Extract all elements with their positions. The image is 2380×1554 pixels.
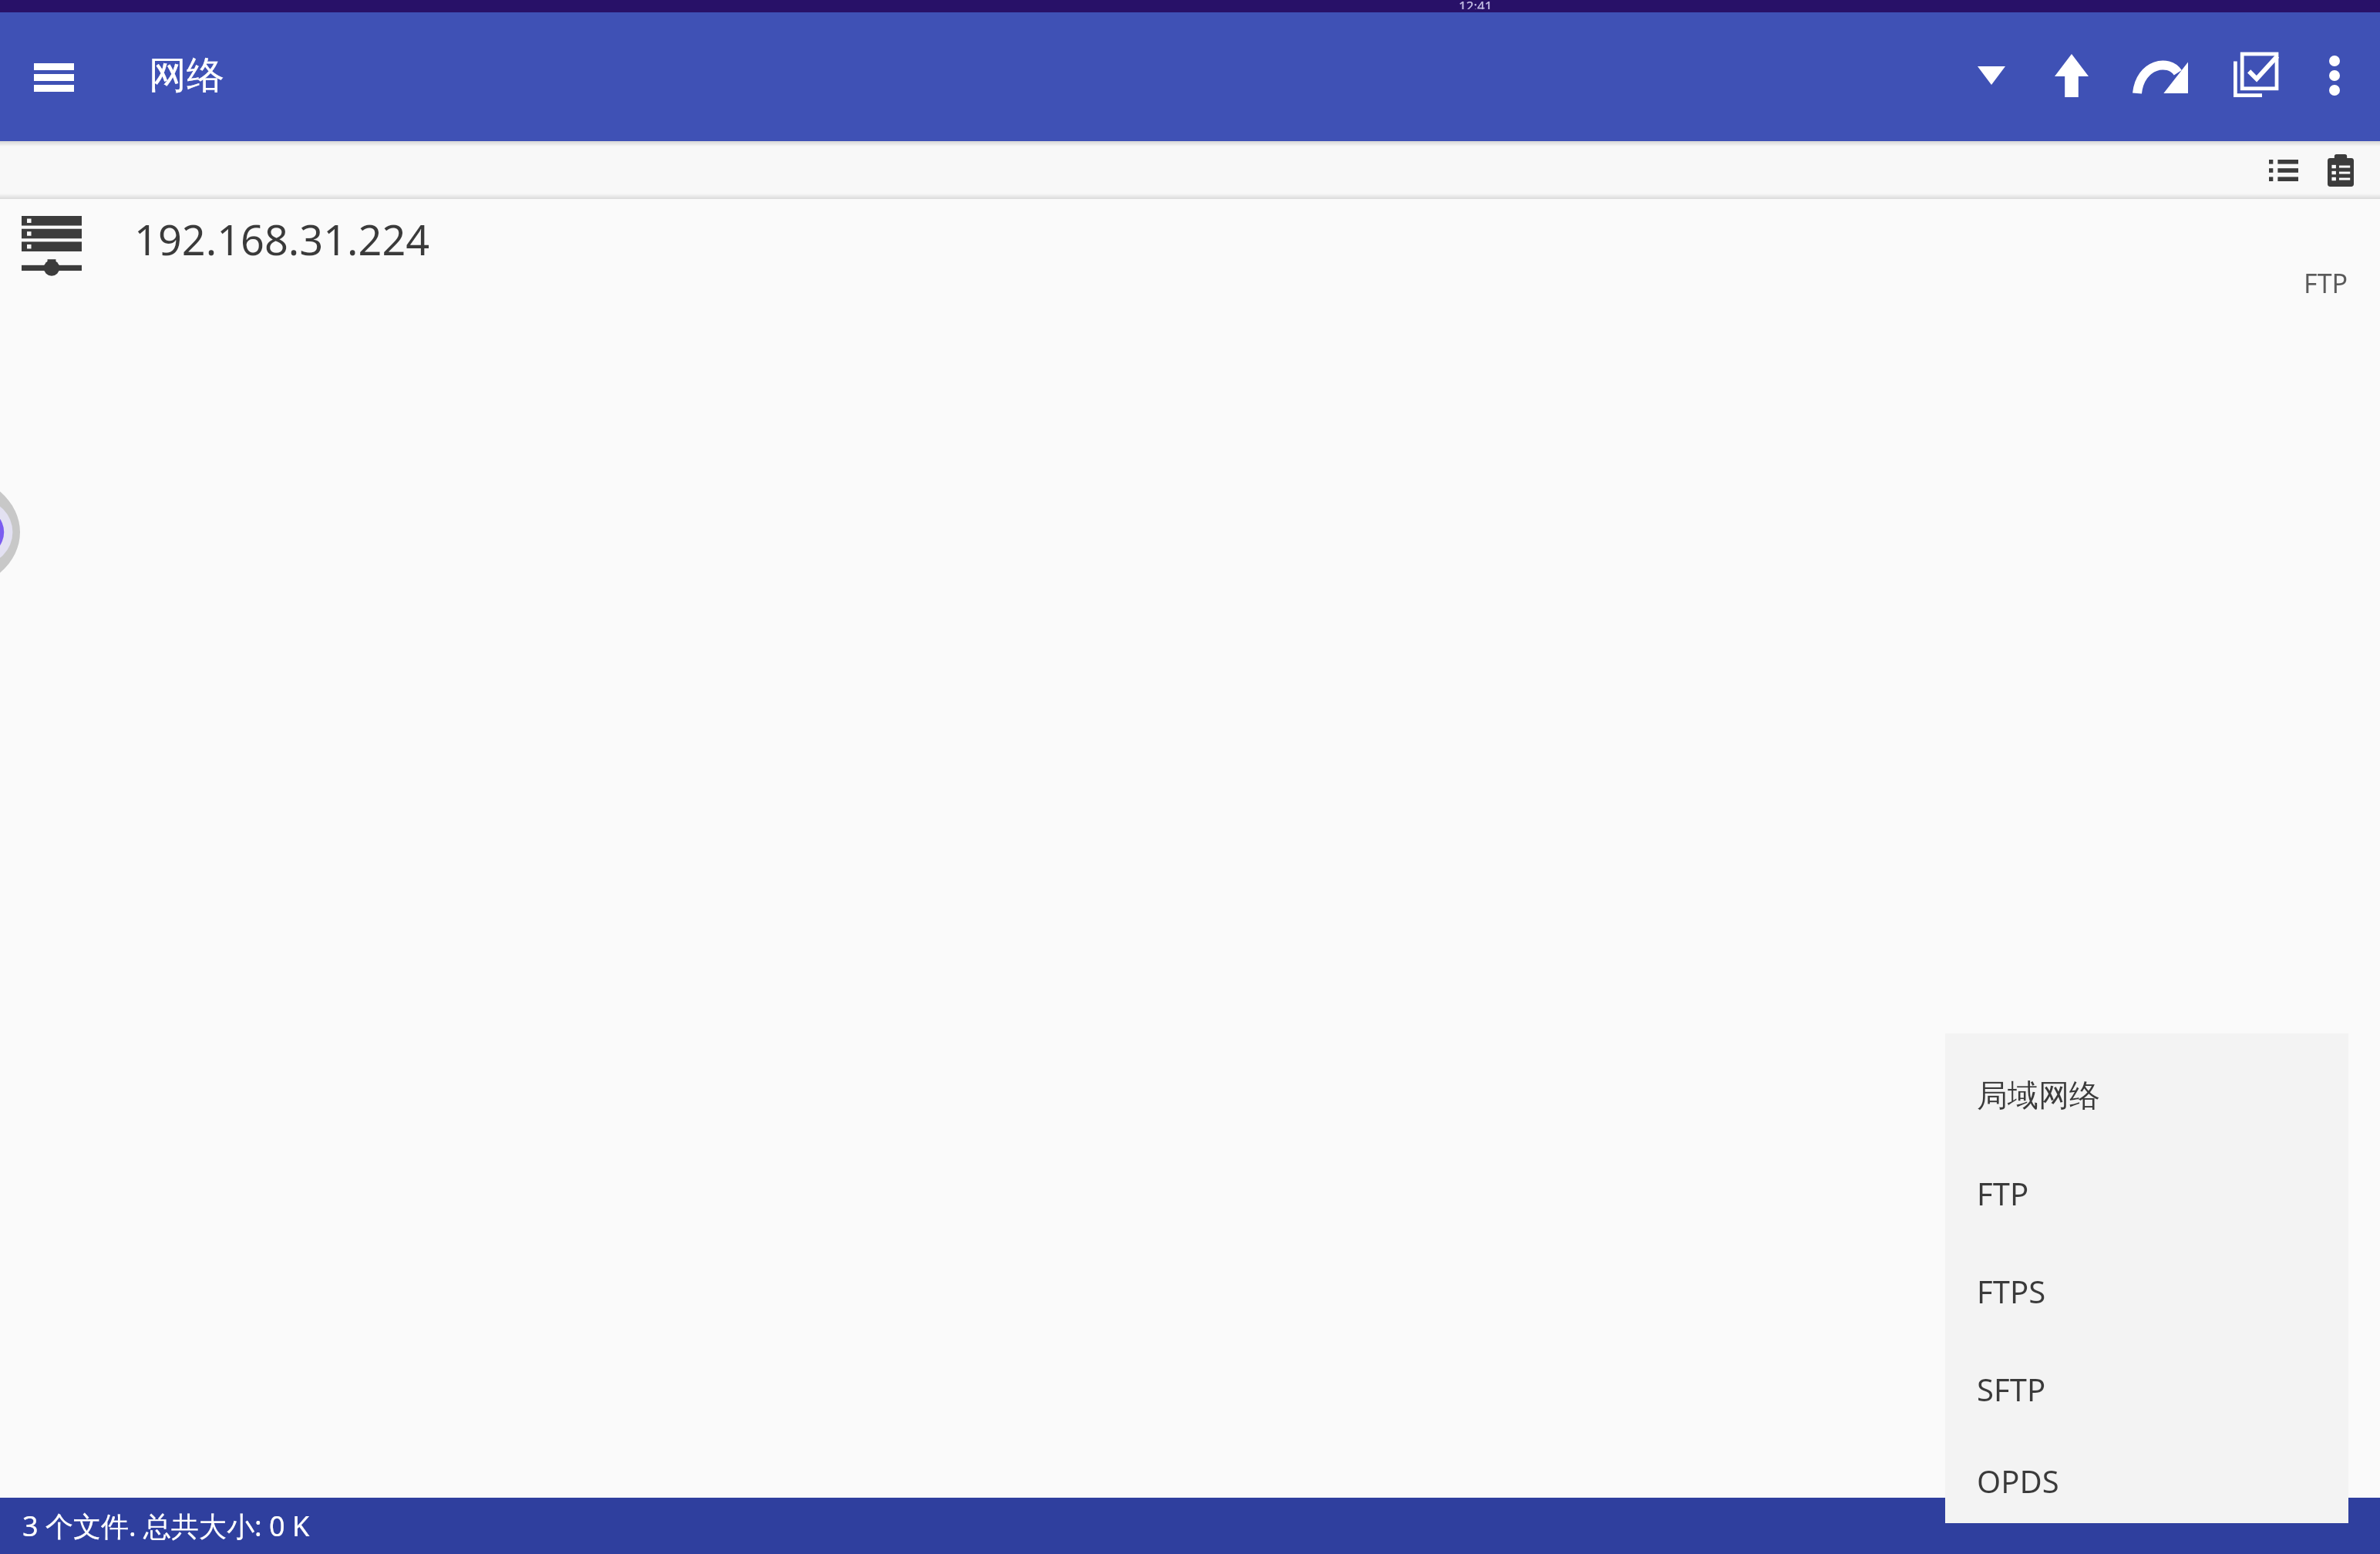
staticText: 网络: [149, 52, 224, 99]
button[interactable]: View mode: [2257, 146, 2311, 195]
button[interactable]: Go to parent folder: [2035, 39, 2109, 113]
button[interactable]: OPDS: [1945, 1438, 2348, 1523]
button[interactable]: Clipboard: [2314, 146, 2368, 195]
button[interactable]: Select all: [2218, 39, 2292, 113]
staticText: 192.168.31.224: [134, 211, 430, 268]
button[interactable]: FTP: [1945, 1144, 2348, 1242]
staticText: FTP: [1977, 1172, 2029, 1214]
button[interactable]: Redo: [2126, 39, 2200, 113]
staticText: 3 个文件. 总共大小: 0 K: [22, 1507, 310, 1545]
staticText: SFTP: [1977, 1368, 2046, 1410]
button[interactable]: FTPS: [1945, 1242, 2348, 1340]
button[interactable]: 192.168.31.224: [0, 199, 2380, 307]
button[interactable]: Sort order: [1954, 39, 2028, 113]
staticText: FTPS: [1977, 1270, 2046, 1312]
button[interactable]: SFTP: [1945, 1340, 2348, 1438]
button[interactable]: Open navigation drawer: [17, 40, 91, 114]
button[interactable]: More options: [2300, 41, 2369, 110]
staticText: 12:41: [1459, 0, 1493, 9]
staticText: OPDS: [1977, 1460, 2059, 1502]
button[interactable]: 局域网络: [1945, 1046, 2348, 1144]
staticText: 局域网络: [1977, 1076, 2100, 1114]
staticText: FTP: [2304, 265, 2348, 301]
